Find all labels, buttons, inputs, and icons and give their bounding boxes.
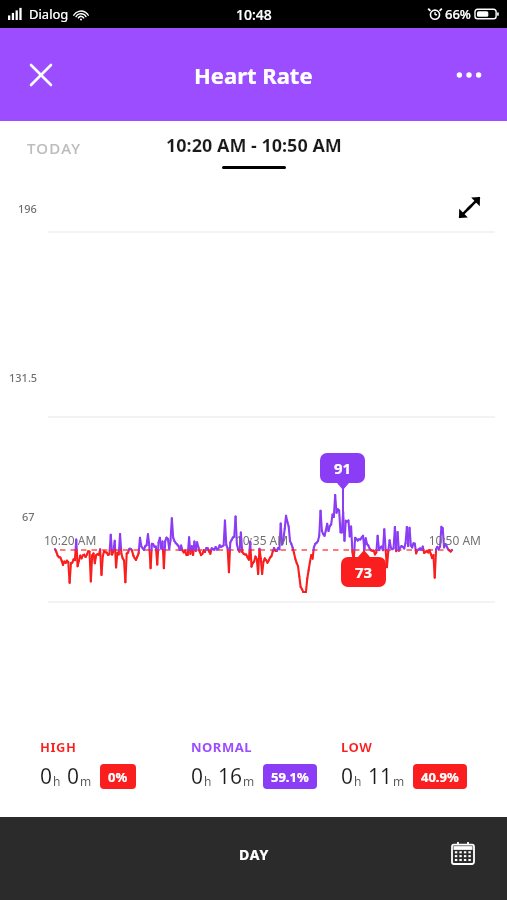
staticText: 10:48 [236, 5, 272, 24]
staticText: 67 [22, 509, 35, 524]
staticText: NORMAL [191, 738, 252, 756]
button[interactable]: NORMAL [191, 738, 341, 791]
staticText: 0% [108, 768, 128, 786]
staticText: 0 [341, 762, 354, 791]
staticText: 16 [218, 762, 243, 791]
button[interactable]: Expand chart [449, 187, 489, 227]
button[interactable]: Close [17, 51, 65, 99]
button[interactable]: Calendar [443, 833, 483, 873]
staticText: 91 [334, 458, 352, 478]
staticText: Heart Rate [194, 60, 313, 90]
staticText: h [53, 773, 61, 789]
staticText: h [354, 773, 362, 789]
staticText: 0 [191, 762, 204, 791]
staticText: 10:20 AM - 10:50 AM [166, 133, 342, 158]
staticText: 59.1% [271, 768, 309, 786]
button[interactable]: More options [445, 51, 493, 99]
button[interactable]: HIGH [40, 738, 191, 791]
staticText: 10:50 AM [335, 532, 481, 548]
staticText: 196 [18, 201, 37, 216]
button[interactable]: 10:20 AM - 10:50 AM [166, 133, 342, 169]
staticText: 0 [67, 762, 80, 791]
staticText: h [204, 773, 212, 789]
staticText: Dialog [29, 5, 69, 23]
staticText: 0 [40, 762, 53, 791]
staticText: 10:20 AM [44, 532, 189, 548]
staticText: HIGH [40, 738, 77, 756]
staticText: LOW [341, 738, 373, 756]
staticText: m [243, 773, 255, 789]
staticText: 10:35 AM [189, 532, 335, 548]
staticText: m [393, 773, 405, 789]
staticText: 40.9% [421, 768, 459, 786]
staticText: m [80, 773, 92, 789]
staticText: DAY [239, 845, 269, 864]
staticText: 66% [445, 5, 471, 23]
staticText: TODAY [27, 138, 82, 158]
button[interactable]: DAY [221, 839, 287, 870]
staticText: 73 [355, 562, 373, 582]
button[interactable]: LOW [341, 738, 491, 791]
staticText: 131.5 [9, 370, 38, 385]
staticText: 11 [368, 762, 393, 791]
